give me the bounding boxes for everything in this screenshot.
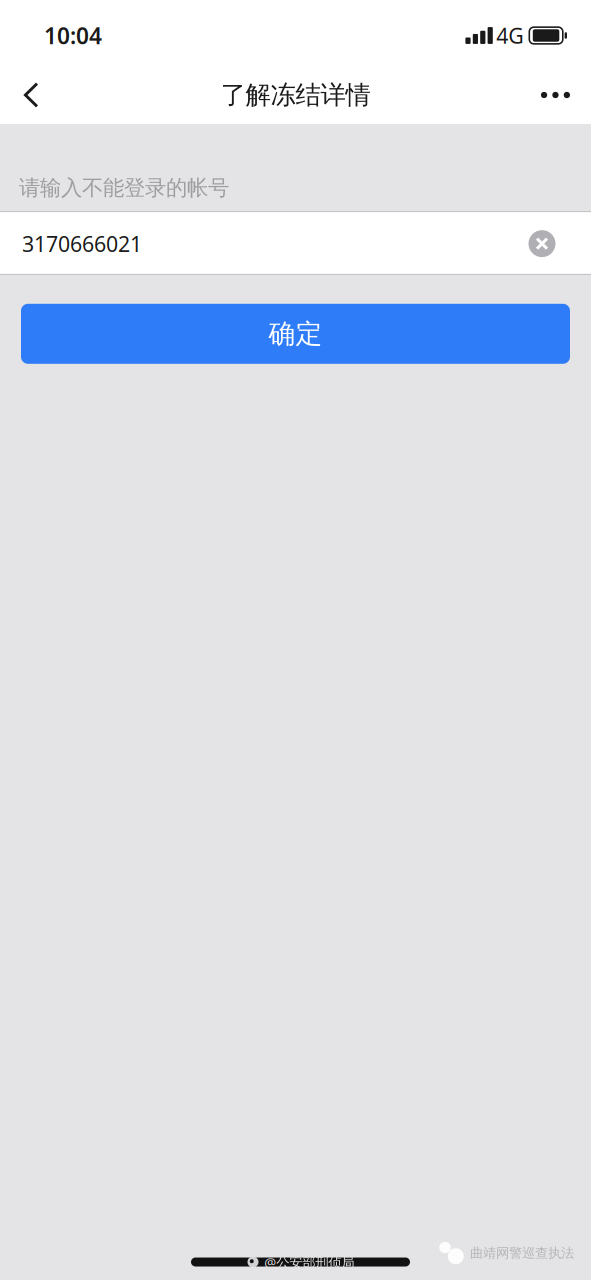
staticText: 确定: [268, 317, 322, 350]
staticText: 请输入不能登录的帐号: [19, 175, 229, 201]
button[interactable]: 确定: [21, 304, 570, 364]
staticText: @公安部刑侦局: [264, 1253, 354, 1271]
button[interactable]: More options: [523, 66, 591, 124]
button[interactable]: Clear text: [520, 218, 564, 270]
staticText: 了解冻结详情: [220, 79, 370, 110]
button[interactable]: 3170666021: [0, 212, 591, 274]
staticText: 曲靖网警巡查执法: [470, 1245, 574, 1261]
button[interactable]: Back: [0, 66, 56, 124]
staticText: 3170666021: [22, 229, 142, 258]
staticText: 10:04: [44, 20, 102, 50]
staticText: 4G: [496, 21, 524, 50]
